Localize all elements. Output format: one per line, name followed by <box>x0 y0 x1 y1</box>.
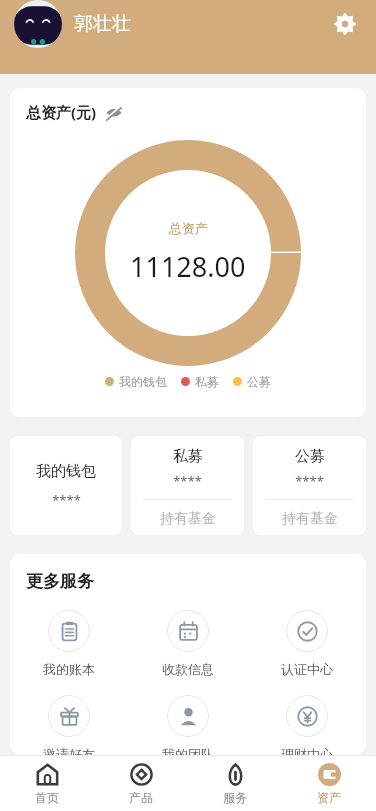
staticText: 首页 <box>35 790 59 805</box>
button[interactable]: 认证中心 <box>247 610 366 677</box>
staticText: 总资产(元) <box>26 102 97 122</box>
button[interactable]: 我的钱包 <box>10 436 122 535</box>
staticText: **** <box>173 472 202 490</box>
staticText: 总资产 <box>169 220 208 236</box>
button[interactable]: 私募 <box>131 436 244 535</box>
staticText: **** <box>52 491 81 509</box>
staticText: 公募 <box>295 447 325 466</box>
button[interactable]: 收款信息 <box>128 610 247 677</box>
staticText: 我的账本 <box>43 661 95 677</box>
button[interactable]: 产品 <box>94 763 188 805</box>
button[interactable]: 我的钱包 <box>105 374 167 389</box>
staticText: 服务 <box>223 790 247 805</box>
button[interactable]: 邀请好友 <box>10 695 128 755</box>
button[interactable]: 服务 <box>188 763 282 805</box>
button[interactable]: 资产 <box>282 763 376 805</box>
button[interactable]: 我的账本 <box>10 610 128 677</box>
staticText: 收款信息 <box>162 661 214 677</box>
button[interactable]: 公募 <box>233 374 271 389</box>
button[interactable]: 首页 <box>0 763 94 805</box>
staticText: 公募 <box>247 374 271 389</box>
staticText: 私募 <box>195 374 219 389</box>
staticText: 我的团队 <box>162 746 214 755</box>
other: Hide amount <box>105 103 123 121</box>
button[interactable]: 理财中心 <box>247 695 366 755</box>
staticText: 理财中心 <box>281 746 333 755</box>
staticText: 我的钱包 <box>36 462 96 481</box>
staticText: 11128.00 <box>130 248 246 285</box>
staticText: 认证中心 <box>281 661 333 677</box>
button[interactable]: 我的团队 <box>128 695 247 755</box>
staticText: 我的钱包 <box>119 374 167 389</box>
staticText: 更多服务 <box>26 571 94 592</box>
staticText: 郭壮壮 <box>74 12 131 36</box>
button[interactable]: 总资产(元) <box>26 102 123 122</box>
button[interactable]: 私募 <box>181 374 219 389</box>
staticText: 产品 <box>129 790 153 805</box>
button[interactable]: 公募 <box>253 436 366 535</box>
button[interactable]: Settings <box>328 7 362 41</box>
staticText: 资产 <box>317 790 341 805</box>
button[interactable] <box>14 0 62 48</box>
staticText: 持有基金 <box>282 510 338 528</box>
staticText: 持有基金 <box>160 510 216 528</box>
staticText: **** <box>295 472 324 490</box>
staticText: 私募 <box>173 447 203 466</box>
staticText: 邀请好友 <box>43 746 95 755</box>
